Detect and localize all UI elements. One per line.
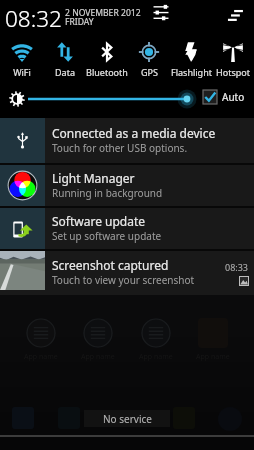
button[interactable]: Data (43, 30, 86, 80)
button[interactable]: Hotspot (212, 30, 254, 80)
staticText: Bluetooth (86, 66, 128, 78)
button[interactable]: Bluetooth (86, 30, 128, 80)
staticText: No service (103, 412, 152, 426)
staticText: 2 NOVEMBER 2012 (65, 7, 141, 19)
staticText: Set up software update (52, 229, 162, 243)
button[interactable]: App name (196, 318, 230, 362)
staticText: Touch for other USB options. (52, 141, 188, 155)
button[interactable]: App name (24, 318, 58, 362)
staticText: Auto (222, 90, 245, 104)
button[interactable]: Brightness (9, 91, 25, 107)
button[interactable]: Light Manager (0, 165, 254, 206)
button[interactable]: Connected as a media device (0, 118, 254, 163)
button[interactable]: GPS (128, 30, 170, 80)
staticText: Touch to view your screenshot (52, 273, 195, 287)
staticText: WiFi (13, 66, 31, 78)
staticText: Running in background (52, 186, 163, 200)
staticText: Hotspot (216, 66, 250, 78)
button[interactable]: App name (139, 318, 173, 362)
button[interactable]: App name (81, 318, 115, 362)
staticText: GPS (141, 66, 158, 78)
staticText: Data (55, 66, 75, 78)
staticText: Connected as a media device (52, 125, 216, 141)
staticText: Flashlight (171, 66, 212, 78)
button[interactable]: Auto (203, 90, 245, 104)
button[interactable]: Clear all notifications (224, 6, 246, 28)
staticText: FRIDAY (65, 16, 94, 28)
button[interactable]: Software update (0, 208, 254, 249)
button[interactable]: WiFi (0, 30, 43, 80)
staticText: Software update (52, 213, 146, 229)
button[interactable]: Flashlight (170, 30, 212, 80)
staticText: 08:33 (225, 261, 249, 273)
button[interactable]: Screenshot captured (0, 251, 254, 295)
staticText: Light Manager (52, 170, 135, 186)
staticText: Screenshot captured (52, 257, 169, 273)
button[interactable]: Quick settings (150, 2, 172, 24)
staticText: 08:32 (5, 3, 62, 33)
